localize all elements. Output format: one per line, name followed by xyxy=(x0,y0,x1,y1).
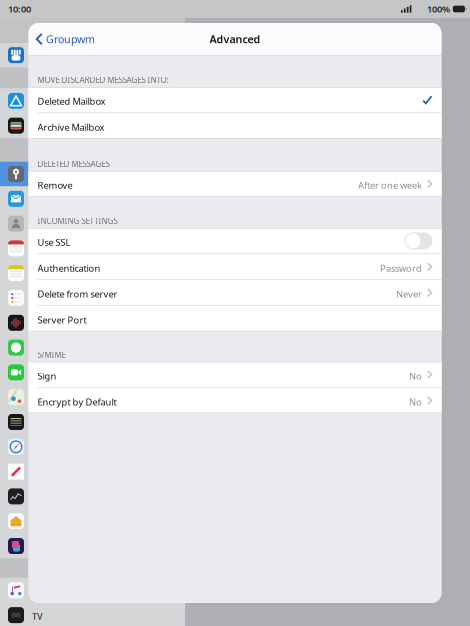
staticText: Mail xyxy=(32,194,49,206)
staticText: Messages xyxy=(32,342,73,355)
button[interactable]: Archive Mailbox xyxy=(28,113,441,138)
button[interactable]: Deleted Mailbox xyxy=(28,87,441,113)
staticText: After one week xyxy=(358,179,422,191)
staticText: S/MIME xyxy=(37,349,65,360)
staticText: Groupwm xyxy=(46,32,95,46)
button[interactable]: Authentication xyxy=(28,254,441,279)
button[interactable]: Groupwm xyxy=(28,23,103,55)
staticText: Authentication xyxy=(37,262,100,274)
button[interactable]: Remove xyxy=(28,171,441,196)
staticText: 10:00 xyxy=(8,3,31,15)
staticText: Notes xyxy=(32,268,57,280)
button[interactable]: Use SSL xyxy=(28,228,441,254)
button[interactable]: Server Port xyxy=(28,306,441,331)
staticText: Remove xyxy=(37,179,72,191)
staticText: Contacts xyxy=(32,218,69,231)
staticText: App Store xyxy=(32,96,75,108)
staticText: Use SSL xyxy=(37,236,70,248)
staticText: Calendar xyxy=(32,243,71,256)
staticText: Voice Memos xyxy=(32,318,88,330)
staticText: INCOMING SETTINGS xyxy=(37,215,117,226)
button[interactable]: Encrypt by Default xyxy=(28,388,441,413)
staticText: Reminders xyxy=(32,293,79,305)
staticText: Maps xyxy=(32,392,55,404)
staticText: Advanced xyxy=(209,32,260,46)
staticText: 100% xyxy=(427,3,450,15)
staticText: MOVE DISCARDED MESSAGES INTO: xyxy=(37,75,168,85)
staticText: Accessibility xyxy=(32,50,81,62)
staticText: Passwords xyxy=(32,169,78,181)
staticText: No xyxy=(409,370,422,382)
staticText: TV xyxy=(32,610,43,622)
staticText: Encrypt by Default xyxy=(37,396,116,408)
button[interactable]: Delete from server xyxy=(28,280,441,305)
staticText: Deleted Mailbox xyxy=(37,95,105,107)
staticText: FaceTime xyxy=(32,367,72,380)
staticText: Delete from server xyxy=(37,288,117,300)
staticText: Archive Mailbox xyxy=(37,121,104,133)
staticText: DELETED MESSAGES xyxy=(37,158,109,169)
staticText: Server Port xyxy=(37,314,86,326)
staticText: Sign xyxy=(37,370,56,382)
staticText: Wallet xyxy=(32,121,57,133)
staticText: Never xyxy=(396,288,422,300)
button[interactable]: Sign xyxy=(28,362,441,387)
staticText: No xyxy=(409,396,422,408)
staticText: Password xyxy=(380,262,422,274)
